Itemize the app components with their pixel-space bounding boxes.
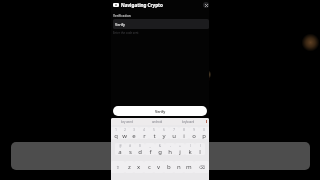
button[interactable]: 1	[111, 127, 120, 139]
button[interactable]: )	[195, 143, 205, 155]
button[interactable]: android	[142, 118, 173, 125]
button[interactable]: 7	[169, 127, 179, 139]
button[interactable]: 6	[159, 127, 169, 139]
staticText: r	[143, 132, 146, 139]
staticText: m	[186, 163, 192, 171]
staticText: q	[114, 132, 118, 139]
staticText: p	[202, 132, 206, 139]
staticText: l	[199, 148, 201, 155]
staticText: ⌫	[199, 165, 205, 170]
staticText: $	[139, 144, 141, 148]
button[interactable]: 5	[149, 127, 159, 139]
staticText: w	[122, 132, 127, 139]
staticText: keyboard	[182, 120, 195, 124]
staticText: 9	[193, 128, 195, 132]
button[interactable]: +	[175, 143, 185, 155]
staticText: n	[177, 163, 181, 171]
staticText: f	[149, 148, 152, 155]
staticText: )	[200, 144, 201, 148]
button[interactable]: 0	[199, 127, 209, 139]
button[interactable]: Backspace	[194, 161, 209, 173]
staticText: @	[119, 144, 122, 148]
staticText: Verify	[115, 22, 125, 27]
button[interactable]: 2	[120, 127, 129, 139]
button[interactable]: _	[145, 143, 155, 155]
staticText: s	[129, 148, 132, 155]
staticText: b	[167, 163, 171, 171]
staticText: c	[148, 163, 151, 171]
staticText: 7	[173, 128, 175, 132]
staticText: i	[183, 132, 185, 139]
staticText: u	[172, 132, 176, 139]
staticText: o	[192, 132, 196, 139]
staticText: 1	[115, 128, 117, 132]
button[interactable]: -	[165, 143, 175, 155]
staticText: t	[153, 132, 156, 139]
staticText: 6	[163, 128, 165, 132]
staticText: key word	[121, 120, 133, 124]
staticText: Verification	[113, 14, 131, 18]
staticText: 0	[203, 128, 205, 132]
staticText: a	[118, 148, 122, 155]
staticText: ⇧	[116, 165, 120, 170]
button[interactable]: m	[184, 161, 194, 173]
button[interactable]: key word	[111, 118, 142, 125]
staticText: #	[129, 144, 131, 148]
staticText: &	[159, 144, 161, 148]
button[interactable]: Close	[203, 2, 209, 8]
staticText: Verify	[155, 109, 166, 114]
button[interactable]: Shift	[111, 161, 125, 173]
button[interactable]: z	[125, 161, 134, 173]
staticText: h	[168, 148, 172, 155]
staticText: k	[188, 148, 192, 155]
button[interactable]: 8	[179, 127, 189, 139]
button[interactable]: #	[125, 143, 135, 155]
button[interactable]: keyboard	[173, 118, 204, 125]
staticText: d	[138, 148, 142, 155]
button[interactable]: v	[154, 161, 164, 173]
button[interactable]: 9	[189, 127, 199, 139]
staticText: g	[158, 148, 162, 155]
staticText: +	[179, 144, 181, 148]
staticText: 8	[183, 128, 185, 132]
staticText: _	[149, 144, 151, 148]
button[interactable]: x	[134, 161, 144, 173]
staticText: v	[157, 163, 161, 171]
staticText: 2	[124, 128, 126, 132]
staticText: Navigating Crypto	[121, 2, 163, 8]
button[interactable]: @	[115, 143, 125, 155]
staticText: (	[190, 144, 191, 148]
button[interactable]: &	[155, 143, 165, 155]
button[interactable]: 3	[129, 127, 139, 139]
button[interactable]: n	[174, 161, 184, 173]
staticText: -	[170, 144, 171, 148]
staticText: 3	[133, 128, 135, 132]
button[interactable]: Verify	[113, 106, 207, 116]
staticText: j	[179, 148, 181, 155]
button[interactable]: c	[144, 161, 154, 173]
button[interactable]: Emoji	[204, 118, 209, 125]
staticText: 4	[143, 128, 145, 132]
button[interactable]: $	[135, 143, 145, 155]
button[interactable]: Verify	[113, 19, 209, 29]
staticText: Enter the code sent	[113, 31, 139, 35]
staticText: z	[128, 163, 131, 171]
staticText: 5	[153, 128, 155, 132]
button[interactable]: b	[164, 161, 174, 173]
staticText: android	[152, 120, 163, 124]
staticText: e	[132, 132, 136, 139]
staticText: y	[162, 132, 166, 139]
staticText: x	[137, 163, 141, 171]
button[interactable]: 4	[139, 127, 149, 139]
button[interactable]: (	[185, 143, 195, 155]
